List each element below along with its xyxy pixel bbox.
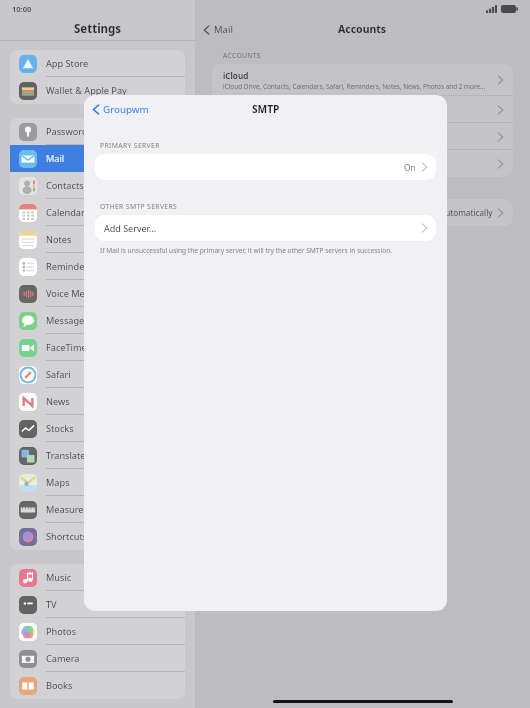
staticText: 10:00 [12,4,32,14]
button[interactable]: FaceTime [10,334,185,361]
button[interactable]: Automatically [212,199,513,226]
staticText: TV [46,598,57,611]
staticText: Messages [46,314,89,327]
button[interactable]: Music [10,564,185,591]
button[interactable]: App Store [10,50,185,77]
button[interactable]: Notes [10,226,185,253]
staticText: Photos [46,625,77,638]
staticText: ACCOUNTS [223,51,261,60]
button[interactable]: News [10,388,185,415]
button[interactable]: Wallet & Apple Pay [10,77,185,104]
button[interactable]: iCloud [212,64,513,96]
staticText: Passwords [46,125,92,138]
staticText: iCloud Drive, Contacts, Calendars, Safar… [223,82,486,91]
button[interactable]: Camera [10,645,185,672]
staticText: Add Server... [104,222,157,234]
staticText: Contacts [46,179,84,192]
staticText: Translate [46,449,86,462]
button[interactable]: Books [10,672,185,699]
staticText: Shortcuts [46,530,88,543]
staticText: Calendar [46,206,85,219]
button[interactable]: Calendar [10,199,185,226]
staticText: iCloud [223,70,249,81]
staticText: If Mail is unsuccessful using the primar… [100,246,393,255]
staticText: Measure [46,503,84,516]
button[interactable]: Groupwm [90,100,151,119]
button[interactable] [212,150,513,177]
staticText: SMTP [252,102,280,116]
staticText: Camera [46,652,80,665]
staticText: App Store [46,57,89,70]
staticText: PRIMARY SERVER [100,141,160,150]
button[interactable]: Stocks [10,415,185,442]
button[interactable]: Shortcuts [10,523,185,550]
button[interactable]: Voice Memos [10,280,185,307]
staticText: Reminders [46,260,93,273]
button[interactable]: Measure [10,496,185,523]
staticText: Stocks [46,422,74,435]
button[interactable]: Maps [10,469,185,496]
button[interactable]: Passwords [10,118,185,145]
button[interactable]: Contacts [10,172,185,199]
button[interactable]: Add Server... [95,215,436,241]
button[interactable]: Photos [10,618,185,645]
staticText: On [404,162,416,173]
staticText: Music [46,571,72,584]
staticText: Automatically [440,207,493,218]
staticText: Notes [46,233,72,246]
button[interactable]: TV [10,591,185,618]
staticText: Settings [74,21,122,37]
staticText: Accounts [338,22,387,36]
button[interactable] [212,123,513,150]
button[interactable] [212,96,513,123]
staticText: Mail [214,23,233,36]
staticText: Voice Memos [46,287,104,300]
staticText: Mail [46,152,65,165]
button[interactable]: Messages [10,307,185,334]
staticText: News [46,395,70,408]
button[interactable]: Safari [10,361,185,388]
staticText: Wallet & Apple Pay [46,84,127,97]
staticText: FaceTime [46,341,87,354]
button[interactable]: Mail [10,145,185,172]
staticText: Maps [46,476,70,489]
staticText: Books [46,679,73,692]
staticText: Safari [46,368,71,381]
button[interactable]: Mail [203,23,233,36]
staticText: OTHER SMTP SERVERS [100,202,178,211]
button[interactable]: Reminders [10,253,185,280]
button[interactable]: On [95,154,436,180]
staticText: Groupwm [103,103,149,116]
button[interactable]: Translate [10,442,185,469]
